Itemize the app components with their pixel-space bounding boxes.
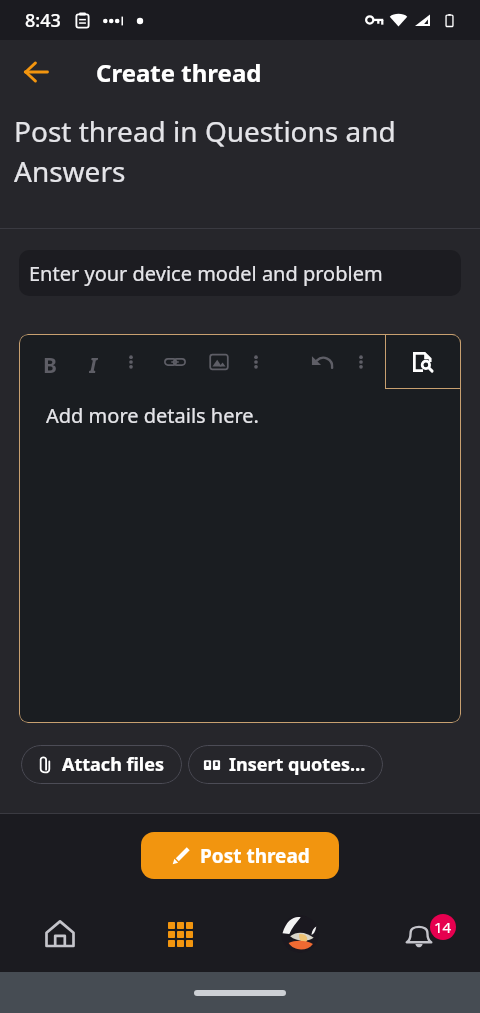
button[interactable]: More insert options <box>248 354 264 370</box>
staticText: B <box>43 351 57 373</box>
button[interactable]: More text options <box>123 354 139 370</box>
staticText: Attach files <box>62 752 165 777</box>
button[interactable]: Home <box>0 896 120 972</box>
button[interactable]: Link <box>164 351 186 373</box>
staticText: Enter your device model and problem <box>29 260 383 287</box>
button[interactable]: Enter your device model and problem <box>19 250 461 296</box>
staticText: Post thread <box>200 843 310 869</box>
button[interactable]: Preview <box>385 334 461 389</box>
staticText: Create thread <box>96 56 262 89</box>
staticText: 14 <box>434 917 452 937</box>
staticText: 8:43 <box>25 8 61 33</box>
staticText: Insert quotes… <box>229 752 366 777</box>
button[interactable]: Bold <box>39 351 61 373</box>
button[interactable]: Italic <box>82 351 104 373</box>
button[interactable]: More options <box>353 354 369 370</box>
staticText: I <box>89 351 98 373</box>
button[interactable]: Forums <box>120 896 240 972</box>
button[interactable]: Account <box>240 896 360 972</box>
button[interactable]: Insert image <box>208 351 230 373</box>
button[interactable]: Attach files <box>21 745 182 784</box>
staticText: Post thread in Questions and Answers <box>14 112 405 191</box>
button[interactable]: Notifications <box>360 896 480 972</box>
button[interactable]: Undo <box>311 350 335 374</box>
staticText: Add more details here. <box>46 402 259 429</box>
button[interactable]: Post thread <box>141 832 339 879</box>
button[interactable]: Back <box>12 48 60 96</box>
button[interactable]: Insert quotes… <box>188 745 383 784</box>
